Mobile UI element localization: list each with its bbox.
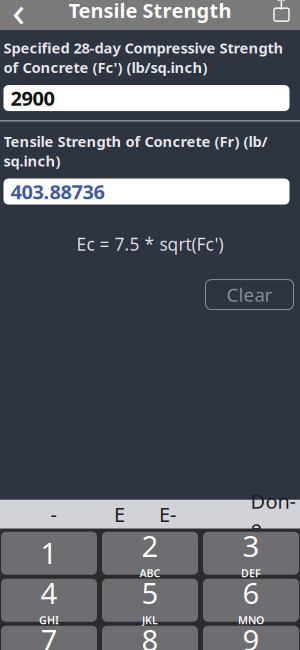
staticText: GHI xyxy=(39,613,59,627)
button[interactable]: Clear xyxy=(205,280,293,310)
staticText: Tensile Strength of Concrete (Fr) (lb/sq… xyxy=(3,132,267,171)
staticText: 6 xyxy=(242,573,259,612)
button[interactable]: 4 xyxy=(1,579,97,622)
staticText: Specified 28-day Compressive Strength of… xyxy=(3,38,283,77)
staticText: ↑ xyxy=(274,0,289,13)
staticText: E xyxy=(114,501,125,527)
staticText: 2900 xyxy=(10,85,54,111)
staticText: DEF xyxy=(241,566,261,580)
button[interactable]: 2 xyxy=(102,532,198,575)
staticText: ABC xyxy=(139,566,160,580)
button[interactable]: - xyxy=(32,500,74,528)
button[interactable]: E xyxy=(98,500,140,528)
staticText: 4 xyxy=(40,573,57,612)
button[interactable]: Share xyxy=(259,0,300,30)
staticText: 1 xyxy=(40,533,57,572)
staticText: 3 xyxy=(242,526,259,565)
staticText: Ec = 7.5 * sqrt(Fc') xyxy=(76,233,223,256)
staticText: 5 xyxy=(141,573,158,612)
staticText: ‹ xyxy=(12,0,25,38)
staticText: 9 xyxy=(242,620,259,650)
button[interactable]: 9 xyxy=(203,626,299,650)
button[interactable]: 7 xyxy=(1,626,97,650)
staticText: 403.88736 xyxy=(10,178,104,205)
button[interactable]: 1 xyxy=(1,532,97,575)
staticText: JKL xyxy=(142,613,158,627)
button[interactable]: 5 xyxy=(102,579,198,622)
button[interactable]: 6 xyxy=(203,579,299,622)
button[interactable]: Done xyxy=(247,500,295,528)
staticText: - xyxy=(50,501,56,527)
staticText: 8 xyxy=(141,620,158,650)
staticText: MNO xyxy=(238,613,264,627)
button[interactable]: 8 xyxy=(102,626,198,650)
button[interactable]: 3 xyxy=(203,532,299,575)
staticText: 7 xyxy=(40,620,57,650)
staticText: 2 xyxy=(141,526,158,565)
button[interactable]: E- xyxy=(146,500,188,528)
staticText: Done xyxy=(250,488,295,541)
staticText: Clear xyxy=(226,282,272,307)
staticText: Tensile Strength xyxy=(68,0,231,23)
staticText: E- xyxy=(159,501,176,527)
button[interactable]: Back xyxy=(0,0,40,30)
